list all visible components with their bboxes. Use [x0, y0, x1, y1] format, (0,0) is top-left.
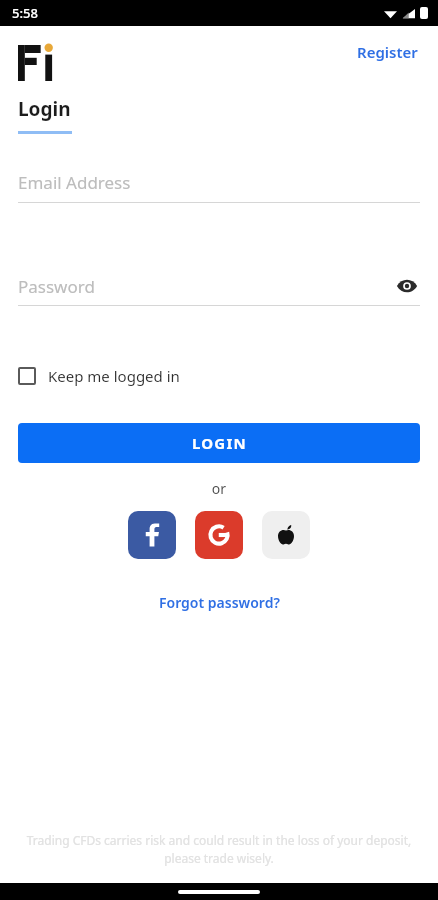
staticText: Email Address [18, 171, 131, 194]
button[interactable]: Show password [394, 273, 420, 299]
staticText: Password [18, 275, 394, 298]
button[interactable]: Login [18, 96, 72, 134]
button[interactable]: Keep me logged in [18, 362, 180, 390]
staticText: Forgot password? [159, 593, 280, 612]
staticText: LOGIN [192, 433, 247, 453]
button[interactable]: Sign in with Google [195, 511, 243, 559]
staticText: or [0, 479, 438, 498]
staticText: Login [18, 96, 71, 122]
button[interactable]: Forgot password? [155, 589, 284, 616]
staticText: Keep me logged in [48, 366, 180, 386]
button[interactable]: Sign in with Facebook [128, 511, 176, 559]
button[interactable]: LOGIN [18, 423, 420, 463]
staticText: Register [357, 42, 418, 62]
button[interactable]: Register [355, 40, 420, 64]
staticText: 5:58 [12, 4, 38, 22]
button[interactable]: Password [18, 273, 420, 299]
staticText: Trading CFDs carries risk and could resu… [26, 832, 412, 867]
button[interactable]: Sign in with Apple [262, 511, 310, 559]
button[interactable]: Email Address [18, 171, 420, 203]
